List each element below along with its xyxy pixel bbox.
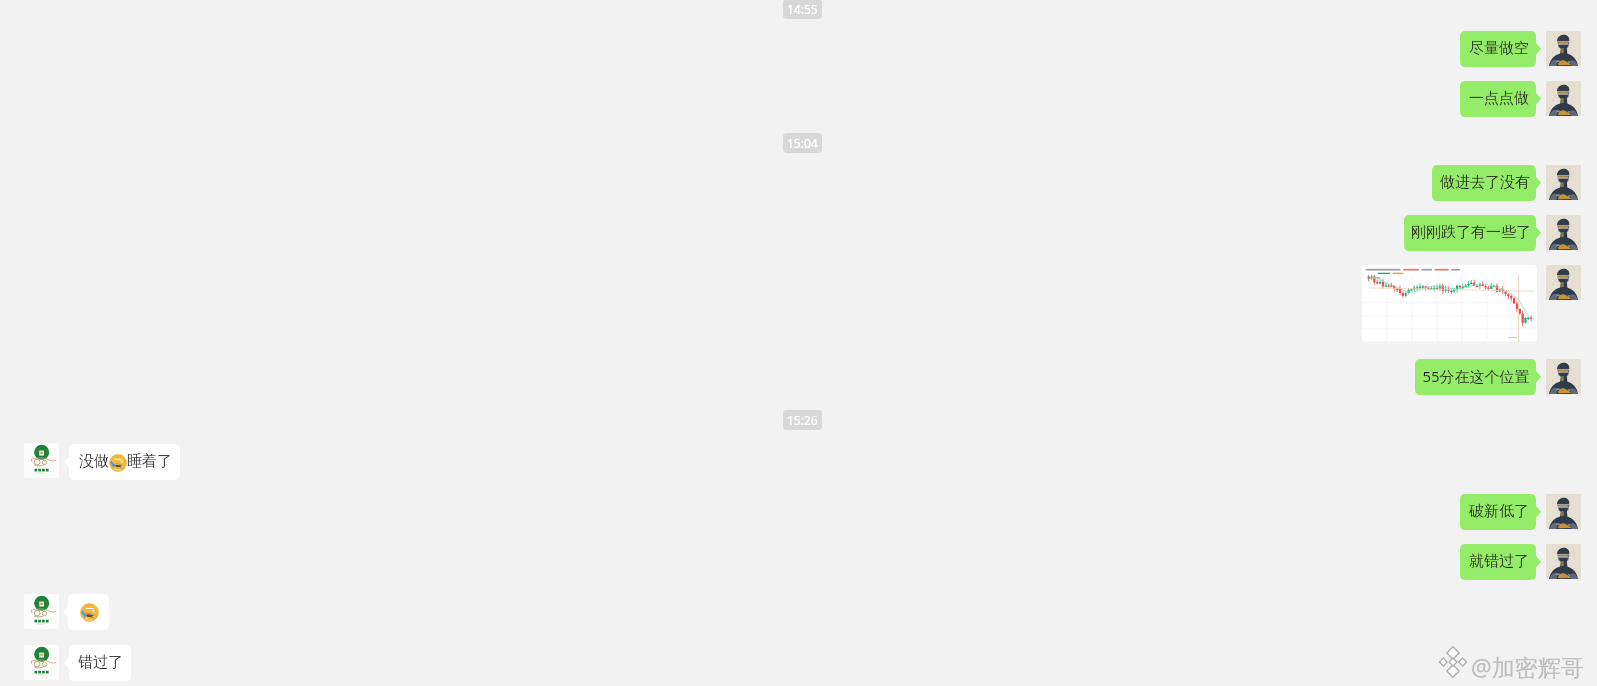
staticText: 刚刚跌了有一些了 <box>1411 224 1531 242</box>
button[interactable]: Contact avatar <box>1546 165 1581 200</box>
button[interactable]: 一点点做 <box>1460 81 1541 117</box>
staticText: 14:55 <box>787 1 818 17</box>
button[interactable]: Contact avatar <box>1546 215 1581 250</box>
staticText: 错过了 <box>78 654 123 672</box>
button[interactable]: Contact avatar <box>1546 31 1581 66</box>
button[interactable]: Contact avatar <box>24 594 59 629</box>
staticText: 15:04 <box>787 135 818 151</box>
staticText: 一点点做 <box>1469 90 1529 108</box>
button[interactable]: 没做 <box>64 444 180 480</box>
button[interactable]: Contact avatar <box>24 443 59 478</box>
button[interactable]: Contact avatar <box>24 645 59 680</box>
button[interactable]: 尽量做空 <box>1460 31 1541 67</box>
button[interactable]: Sleepy face emoji message <box>63 594 109 630</box>
button[interactable]: 破新低了 <box>1460 494 1541 530</box>
button[interactable]: Watermark @加密辉哥 <box>1438 648 1590 676</box>
staticText: 15:26 <box>787 412 818 428</box>
button[interactable]: 刚刚跌了有一些了 <box>1404 215 1541 251</box>
staticText: 破新低了 <box>1469 503 1529 521</box>
staticText: 没做 <box>79 453 109 471</box>
button[interactable]: Contact avatar <box>1546 265 1581 300</box>
button[interactable]: Chart image <box>1362 265 1537 342</box>
button[interactable]: 55分在这个位置 <box>1415 359 1541 395</box>
button[interactable]: Contact avatar <box>1546 81 1581 116</box>
staticText: 尽量做空 <box>1469 40 1529 58</box>
button[interactable]: 做进去了没有 <box>1432 165 1541 201</box>
button[interactable]: 就错过了 <box>1460 544 1541 580</box>
button[interactable]: Contact avatar <box>1546 494 1581 529</box>
button[interactable]: 错过了 <box>64 645 131 681</box>
staticText: 睡着了 <box>127 453 172 471</box>
staticText: 做进去了没有 <box>1440 174 1530 192</box>
button[interactable]: Contact avatar <box>1546 544 1581 579</box>
staticText: 就错过了 <box>1469 553 1529 571</box>
staticText: 55分在这个位置 <box>1422 368 1530 387</box>
button[interactable]: Contact avatar <box>1546 359 1581 394</box>
staticText: @加密辉哥 <box>1471 651 1584 679</box>
